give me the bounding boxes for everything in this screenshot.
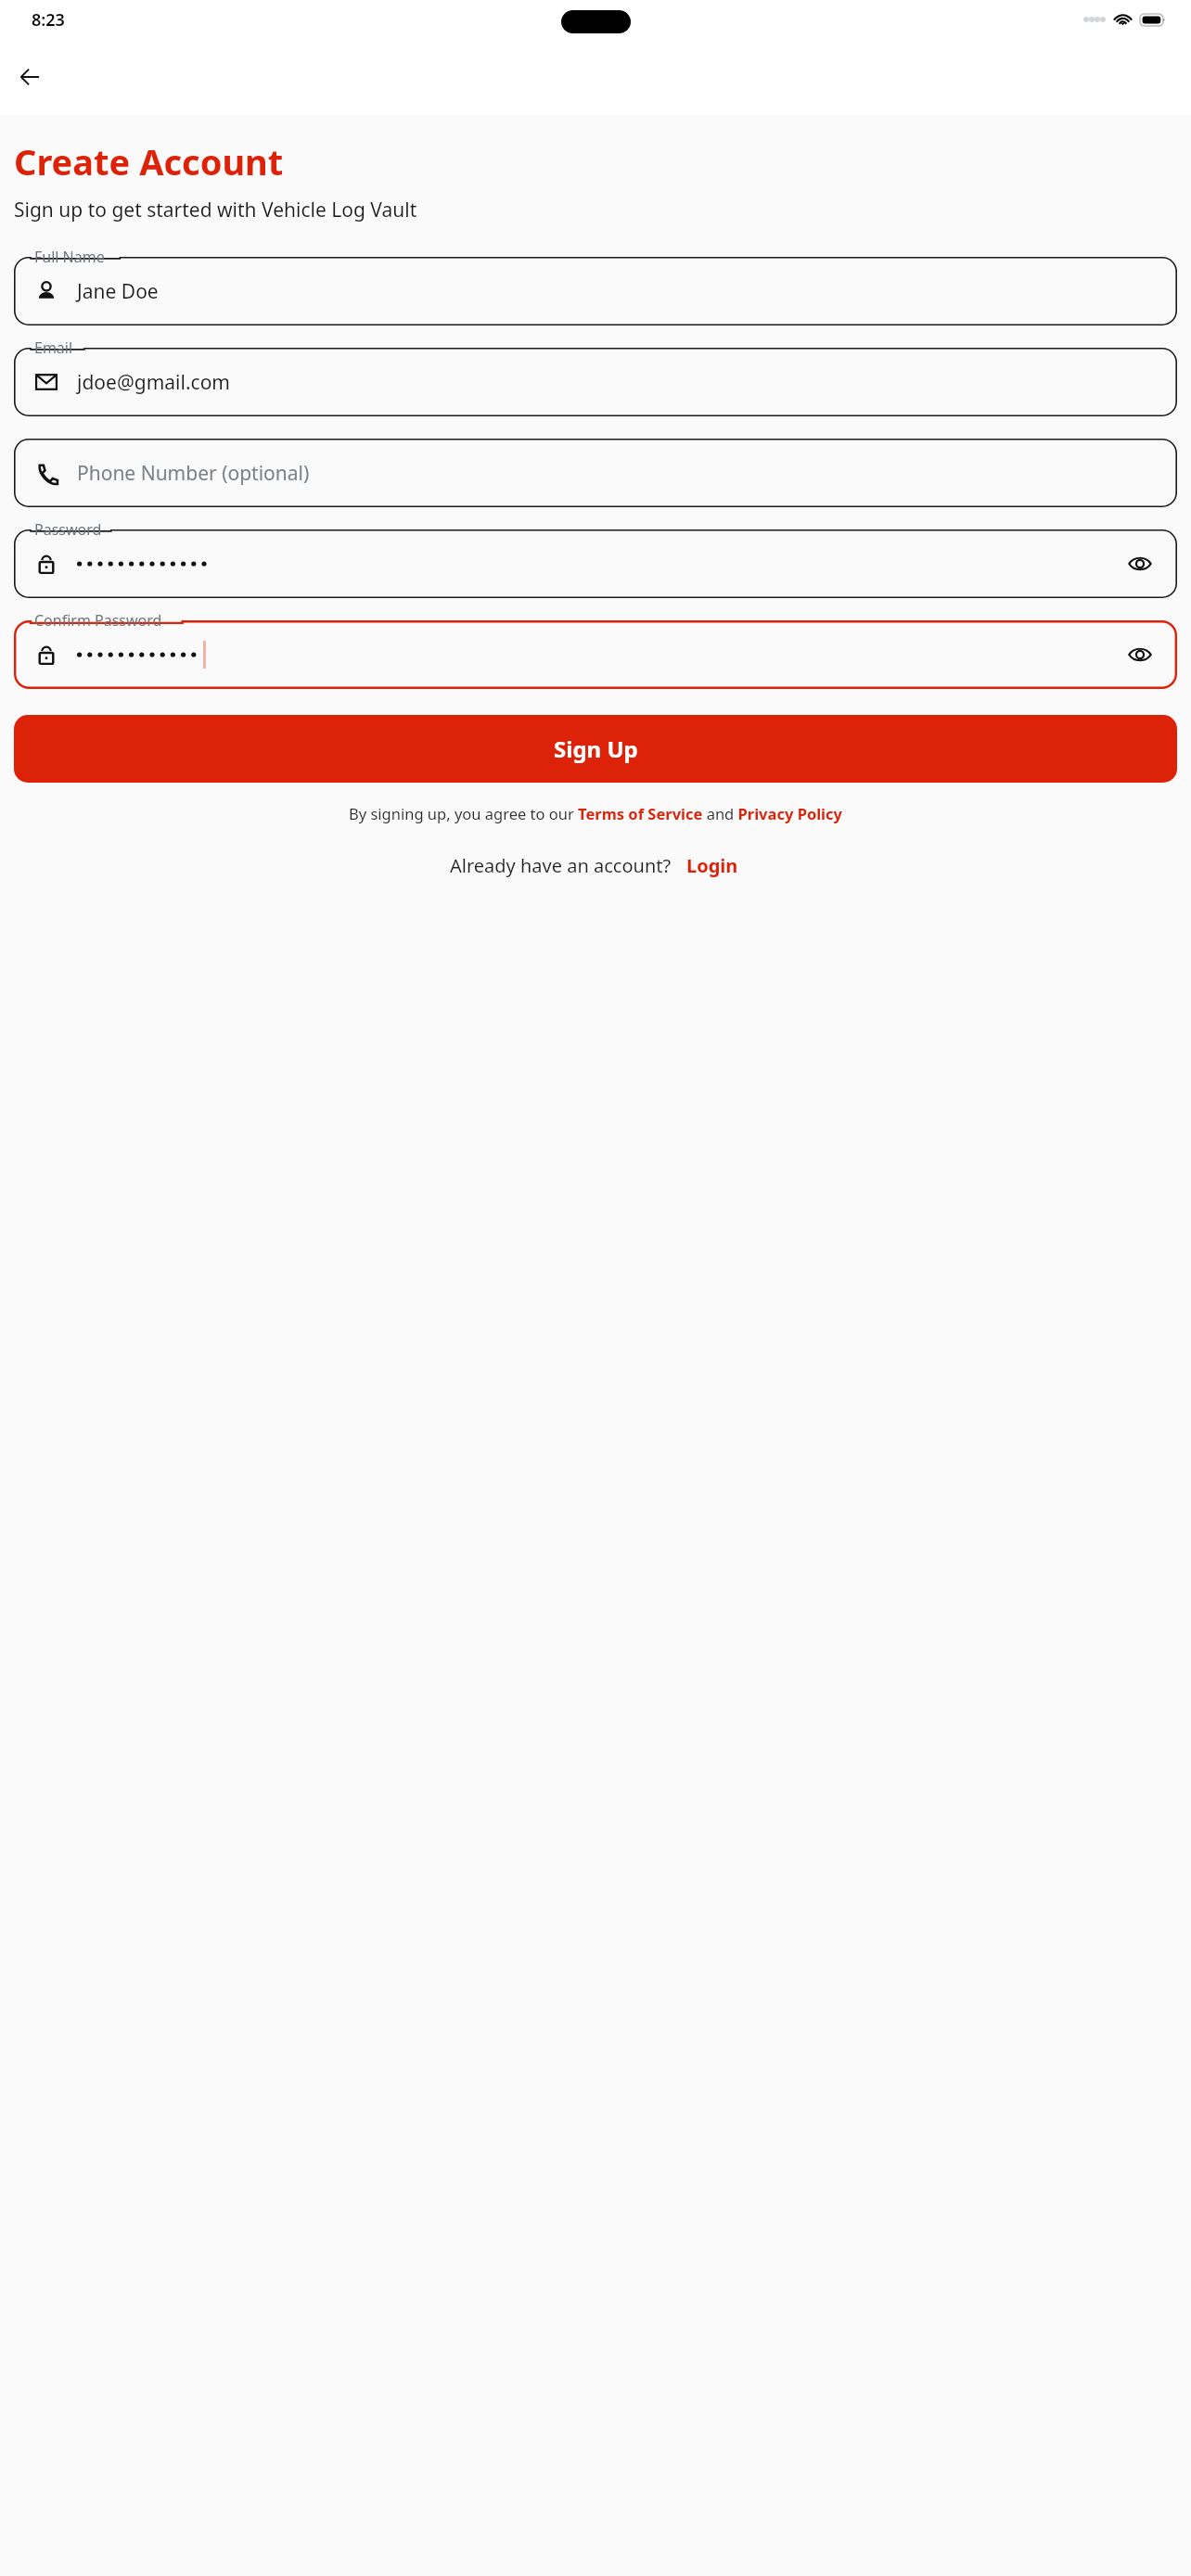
button[interactable]: By signing up, you agree to our Terms of… [19, 803, 1172, 823]
button[interactable]: Login [683, 851, 742, 880]
staticText: Email [34, 338, 73, 358]
button[interactable]: Phone Number (optional) [14, 429, 1177, 507]
staticText: Jane Doe [77, 278, 159, 305]
staticText: Phone Number (optional) [77, 460, 310, 487]
staticText: Login [686, 853, 738, 878]
staticText: Sign Up [554, 733, 638, 764]
staticText: By signing up, you agree to our Terms of… [19, 803, 1172, 823]
staticText: 8:23 [32, 8, 65, 32]
staticText: Create Account [14, 137, 284, 185]
button[interactable]: Toggle password visibility [1121, 636, 1159, 673]
button[interactable]: Sign Up [14, 715, 1177, 783]
button[interactable]: Password [14, 520, 1177, 598]
button[interactable]: Email [14, 338, 1177, 416]
button[interactable]: Toggle password visibility [1121, 545, 1159, 582]
staticText: Confirm Password [34, 610, 162, 631]
button[interactable]: Full Name [14, 248, 1177, 325]
button[interactable]: Back [7, 55, 52, 99]
staticText: Already have an account? [450, 853, 672, 878]
button[interactable]: Confirm Password [14, 611, 1177, 689]
staticText: Sign up to get started with Vehicle Log … [14, 197, 1061, 223]
staticText: jdoe@gmail.com [77, 369, 230, 396]
staticText: Password [34, 519, 102, 540]
staticText: Full Name [34, 247, 105, 267]
